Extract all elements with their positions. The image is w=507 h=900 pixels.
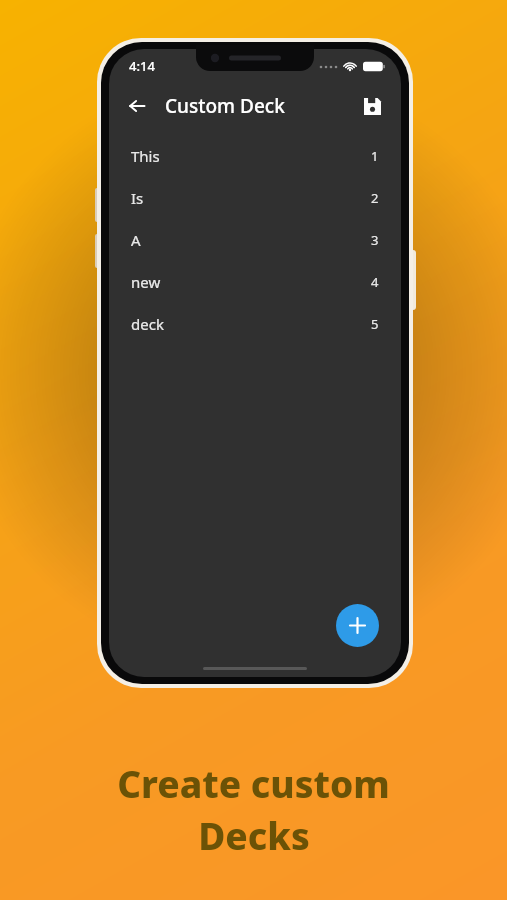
staticText: 5 bbox=[371, 315, 379, 333]
staticText: Create custom bbox=[117, 758, 390, 808]
staticText: deck bbox=[131, 314, 164, 334]
staticText: This bbox=[131, 146, 160, 166]
staticText: 4 bbox=[371, 273, 379, 291]
staticText: Custom Deck bbox=[165, 93, 285, 119]
staticText: new bbox=[131, 272, 161, 292]
staticText: 2 bbox=[371, 189, 379, 207]
button[interactable]: A bbox=[109, 219, 401, 261]
staticText: 3 bbox=[371, 231, 379, 249]
button[interactable]: Is bbox=[109, 177, 401, 219]
staticText: Is bbox=[131, 188, 144, 208]
button[interactable]: Save bbox=[355, 89, 389, 123]
staticText: A bbox=[131, 230, 141, 250]
button[interactable]: deck bbox=[109, 303, 401, 345]
button[interactable]: new bbox=[109, 261, 401, 303]
button[interactable]: Add card bbox=[336, 604, 379, 647]
staticText: 4:14 bbox=[129, 57, 155, 75]
button[interactable]: Back bbox=[119, 88, 155, 124]
staticText: 1 bbox=[371, 147, 379, 165]
button[interactable]: This bbox=[109, 135, 401, 177]
staticText: Decks bbox=[198, 810, 310, 860]
